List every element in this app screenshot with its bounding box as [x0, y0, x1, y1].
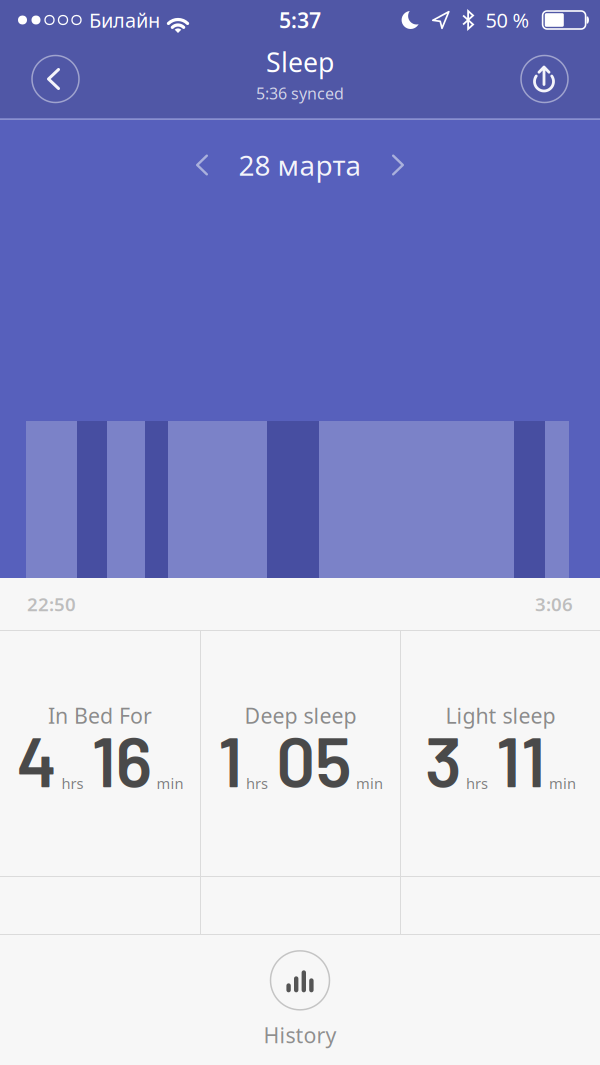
staticText: 50 %	[486, 7, 530, 33]
staticText: 28 марта	[238, 146, 361, 184]
staticText: 22:50	[27, 592, 76, 616]
staticText: 5:36 synced	[256, 83, 344, 104]
staticText: hrs	[466, 774, 488, 793]
button[interactable]	[521, 55, 568, 102]
staticText: Sleep	[266, 44, 334, 80]
staticText: min	[549, 774, 576, 793]
staticText: History	[263, 1021, 336, 1049]
staticText: Light sleep	[445, 701, 555, 730]
staticText: hrs	[61, 774, 83, 793]
staticText: hrs	[246, 774, 268, 793]
staticText: 3	[425, 718, 462, 801]
staticText: 11	[496, 718, 545, 801]
staticText: min	[156, 774, 183, 793]
staticText: Билайн	[89, 7, 160, 33]
staticText: 4	[16, 718, 57, 801]
staticText: 05	[276, 718, 352, 801]
button[interactable]	[380, 142, 416, 187]
staticText: In Bed For	[48, 701, 152, 730]
staticText: 3:06	[535, 592, 573, 616]
staticText: 5:37	[279, 6, 321, 34]
button[interactable]: History	[263, 951, 336, 1049]
staticText: 1	[218, 718, 242, 801]
staticText: Deep sleep	[244, 701, 356, 730]
staticText: min	[356, 774, 383, 793]
staticText: 16	[91, 718, 152, 801]
button[interactable]	[32, 55, 79, 102]
button[interactable]	[184, 142, 220, 187]
